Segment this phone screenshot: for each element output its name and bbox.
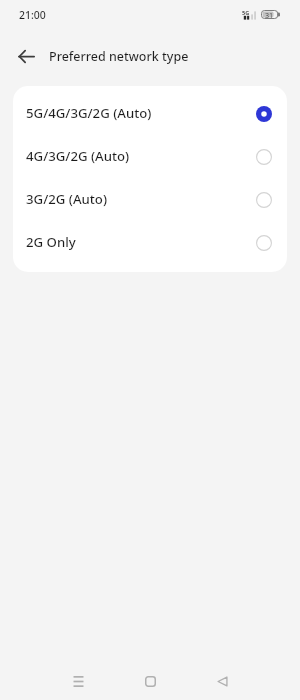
button[interactable]: Back [0, 29, 48, 83]
button[interactable]: 5G/4G/3G/2G (Auto) [13, 92, 287, 135]
button[interactable]: 4G/3G/2G (Auto) [13, 135, 287, 178]
button[interactable]: Recents [60, 662, 96, 700]
staticText: 3G/2G (Auto) [26, 190, 256, 208]
staticText: 5G/4G/3G/2G (Auto) [26, 104, 256, 122]
staticText: 21:00 [19, 8, 46, 22]
staticText: 31 [265, 10, 274, 19]
button[interactable]: 3G/2G (Auto) [13, 178, 287, 221]
staticText: 2G Only [26, 233, 256, 251]
staticText: Preferred network type [49, 48, 189, 65]
button[interactable]: Home [132, 662, 168, 700]
staticText: 5G [242, 9, 250, 16]
button[interactable]: Back [204, 662, 240, 700]
staticText: 4G/3G/2G (Auto) [26, 147, 256, 165]
button[interactable]: 2G Only [13, 221, 287, 264]
